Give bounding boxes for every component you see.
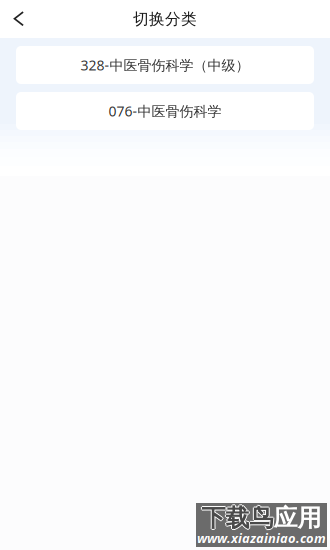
button[interactable]: 328-中医骨伤科学（中级） — [16, 46, 314, 84]
button[interactable]: 076-中医骨伤科学 — [16, 92, 314, 130]
staticText: 下载鸟 — [201, 502, 273, 532]
staticText: 下载鸟 — [201, 504, 273, 534]
staticText: 328-中医骨伤科学（中级） — [80, 55, 249, 75]
staticText: 076-中医骨伤科学 — [108, 101, 221, 121]
staticText: 切换分类 — [133, 9, 197, 29]
staticText: www.xiazainiao.com — [197, 529, 326, 547]
staticText: 下载鸟 — [200, 503, 272, 533]
staticText: 下载鸟 — [201, 503, 273, 533]
button[interactable]: Back — [0, 0, 38, 38]
staticText: 应用 — [273, 503, 321, 533]
staticText: 下载鸟 — [202, 503, 274, 533]
